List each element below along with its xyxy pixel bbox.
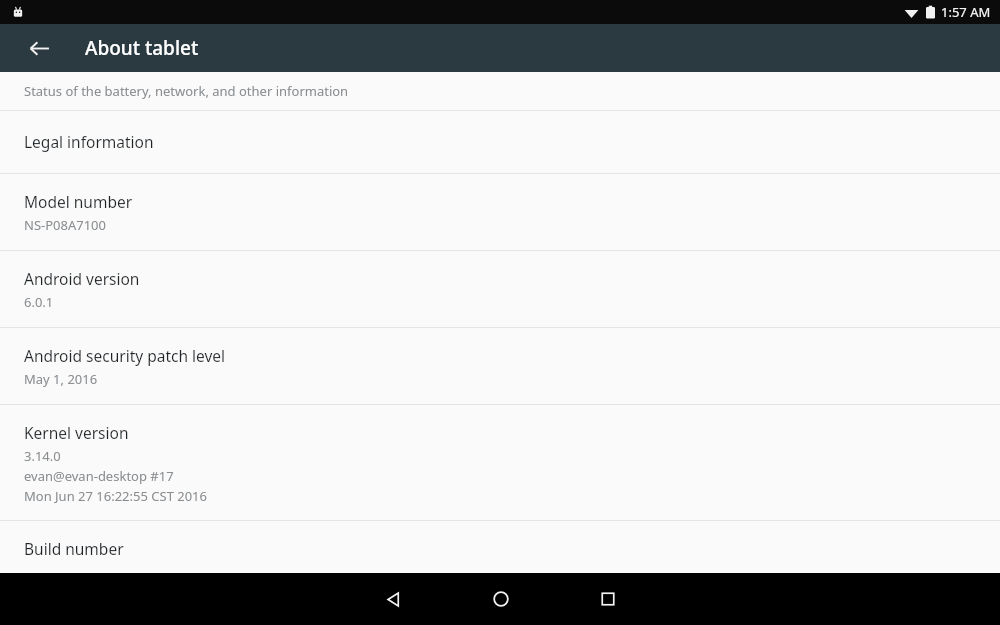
button[interactable]: Build number [0,521,1000,573]
staticText: Legal information [24,131,154,152]
button[interactable]: Kernel version [0,405,1000,520]
staticText: May 1, 2016 [24,370,98,388]
button[interactable]: Back [340,573,447,625]
staticText: 3.14.0 [24,447,61,465]
button[interactable]: Android version [0,251,1000,327]
button[interactable]: Recent apps [554,573,661,625]
staticText: evan@evan-desktop #17 [24,467,174,485]
staticText: 1:57 AM [941,3,991,21]
button[interactable]: Status of the battery, network, and othe… [0,72,1000,110]
staticText: Build number [24,538,124,557]
staticText: Android security patch level [24,345,226,366]
button[interactable]: Back [15,24,63,72]
staticText: Status of the battery, network, and othe… [24,82,349,100]
button[interactable]: Legal information [0,111,1000,173]
staticText: Mon Jun 27 16:22:55 CST 2016 [24,487,207,505]
staticText: 6.0.1 [24,293,54,311]
button[interactable]: Home [447,573,554,625]
button[interactable]: Model number [0,174,1000,250]
staticText: Kernel version [24,422,129,443]
staticText: About tablet [85,35,199,61]
button[interactable]: Android security patch level [0,328,1000,404]
staticText: Model number [24,191,133,212]
staticText: Android version [24,268,140,289]
staticText: NS-P08A7100 [24,216,106,234]
